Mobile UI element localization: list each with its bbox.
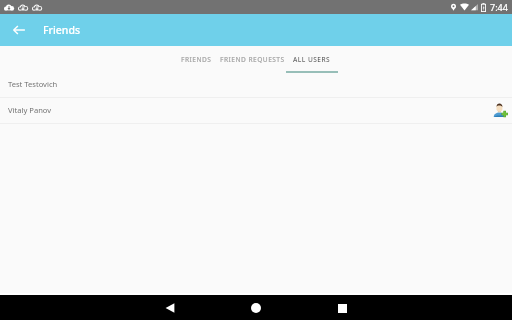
button[interactable]: Test Testovich [0,73,512,97]
button[interactable]: Vitaly Panov [0,98,512,123]
button[interactable]: Add friend [491,100,509,118]
button[interactable]: Back [158,296,182,320]
staticText: Friends [43,23,81,37]
button[interactable]: FRIEND REQUESTS [219,46,286,73]
staticText: FRIENDS [181,55,212,64]
button[interactable]: FRIENDS [174,46,219,73]
staticText: 7:44 [490,1,508,13]
button[interactable]: ALL USERS [286,46,338,73]
button[interactable]: Recent apps [330,296,354,320]
staticText: ALL USERS [293,55,331,64]
staticText: Vitaly Panov [8,105,52,115]
button[interactable]: Home [244,296,268,320]
button[interactable]: Back [8,19,30,41]
staticText: Test Testovich [8,79,58,89]
staticText: FRIEND REQUESTS [220,55,285,64]
